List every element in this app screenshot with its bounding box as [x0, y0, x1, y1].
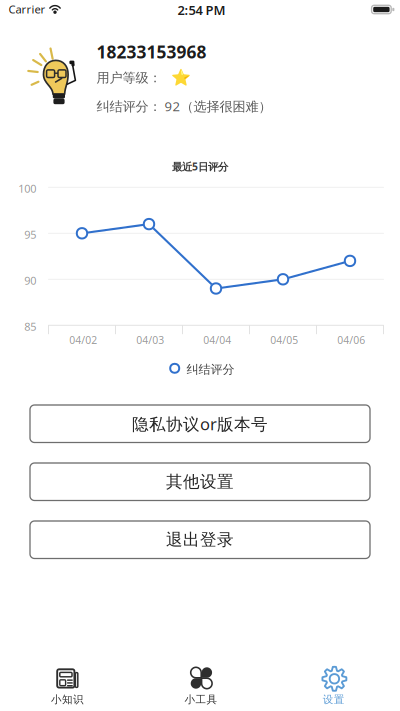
staticText: ⭐: [171, 69, 191, 87]
staticText: 退出登录: [166, 529, 234, 550]
staticText: 04/06: [337, 333, 365, 347]
button[interactable]: 退出登录: [30, 521, 370, 558]
staticText: 95: [24, 227, 36, 242]
button[interactable]: 隐私协议or版本号: [30, 405, 370, 442]
staticText: 用户等级：: [97, 69, 162, 86]
staticText: Carrier: [8, 2, 45, 17]
staticText: 04/05: [270, 333, 298, 347]
button[interactable]: 小知识: [0, 645, 133, 711]
staticText: 小知识: [51, 693, 84, 706]
staticText: 18233153968: [97, 40, 207, 64]
staticText: 04/04: [203, 333, 231, 347]
staticText: 小工具: [184, 693, 217, 706]
staticText: 04/02: [69, 333, 97, 347]
staticText: 2:54 PM: [177, 1, 225, 19]
button[interactable]: 设置: [267, 645, 400, 711]
staticText: 100: [18, 181, 36, 196]
staticText: 其他设置: [166, 471, 234, 492]
staticText: 85: [24, 319, 36, 334]
staticText: 纠结评分: [186, 362, 234, 377]
button[interactable]: 其他设置: [30, 463, 370, 500]
staticText: 90: [24, 273, 36, 288]
staticText: 设置: [323, 693, 345, 706]
button[interactable]: 小工具: [133, 645, 267, 711]
staticText: 最近5日评分: [172, 159, 228, 174]
staticText: 纠结评分： 92（选择很困难）: [97, 97, 272, 115]
staticText: 隐私协议or版本号: [132, 412, 268, 435]
staticText: 04/03: [136, 333, 164, 347]
